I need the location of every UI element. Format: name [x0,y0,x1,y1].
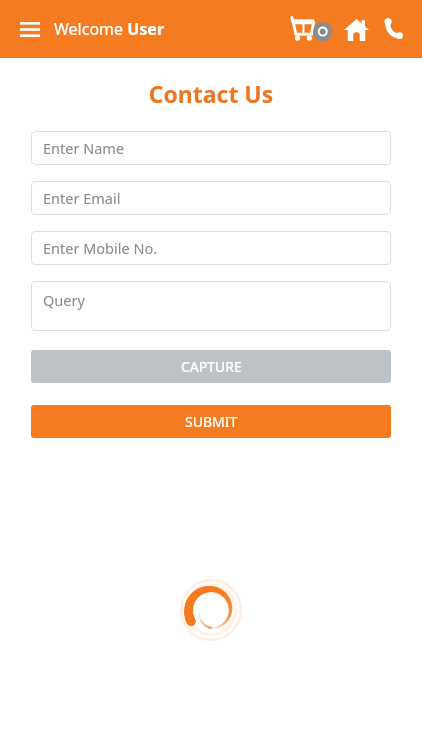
staticText: Enter Mobile No. [43,238,158,258]
button[interactable]: Open navigation menu [14,13,46,45]
button[interactable]: Enter Name [31,131,391,165]
staticText: Welcome User [54,18,165,40]
staticText: Contact Us [0,78,422,109]
button[interactable]: Call us [376,12,410,46]
staticText: SUBMIT [185,412,238,431]
button[interactable]: Enter Email [31,181,391,215]
staticText: Query [43,290,85,310]
button[interactable]: Home [338,11,374,47]
button[interactable]: Enter Mobile No. [31,231,391,265]
staticText: CAPTURE [181,357,242,376]
button[interactable]: CAPTURE [31,350,391,383]
button[interactable]: Shopping cart, 0 items [288,9,334,49]
staticText: Enter Name [43,138,125,158]
button[interactable]: Query [31,281,391,331]
button[interactable]: SUBMIT [31,405,391,438]
staticText: Enter Email [43,188,121,208]
